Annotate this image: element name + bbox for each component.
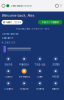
- staticText: Save: [37, 75, 43, 78]
- staticText: Main ..1234: [6, 21, 21, 24]
- button[interactable]: Cards: [0, 69, 16, 78]
- staticText: More: [52, 87, 59, 90]
- staticText: bank.example.com: [11, 4, 32, 7]
- staticText: Available: [1, 37, 12, 40]
- staticText: Insure: [20, 87, 29, 90]
- staticText: Welcome back, Alex: [1, 13, 34, 17]
- button[interactable]: Reload: [55, 4, 58, 7]
- staticText: Pay bill: [19, 63, 29, 66]
- button[interactable]: Pay bill: [16, 56, 32, 66]
- button[interactable]: Loans: [0, 81, 16, 90]
- button[interactable]: Invest: [32, 81, 48, 90]
- staticText: Accounts and offers for you: [15, 27, 48, 30]
- staticText: 4,280.55: [1, 41, 15, 44]
- staticText: Send: [4, 63, 12, 66]
- staticText: Invest: [36, 87, 44, 90]
- button[interactable]: More: [48, 81, 64, 90]
- button[interactable]: Top up: [32, 56, 48, 66]
- button[interactable]: Page settings: [2, 4, 5, 7]
- button[interactable]: Save: [32, 69, 48, 78]
- button[interactable]: Stmts: [48, 56, 64, 66]
- staticText: Current account: [1, 32, 18, 35]
- button[interactable]: Pay or transfer: [38, 20, 62, 24]
- button[interactable]: Insure: [16, 81, 32, 90]
- staticText: Rewards: [19, 75, 30, 78]
- staticText: Cards: [5, 75, 12, 78]
- staticText: Stmts: [52, 63, 59, 66]
- staticText: Help: [52, 75, 59, 78]
- button[interactable]: Help: [48, 69, 64, 78]
- button[interactable]: Rewards: [16, 69, 32, 78]
- button[interactable]: Send: [0, 56, 16, 66]
- button[interactable]: Main ..1234: [1, 20, 23, 24]
- staticText: Pay or transfer: [42, 21, 59, 24]
- staticText: Loans: [4, 87, 12, 90]
- staticText: Top up: [34, 63, 45, 66]
